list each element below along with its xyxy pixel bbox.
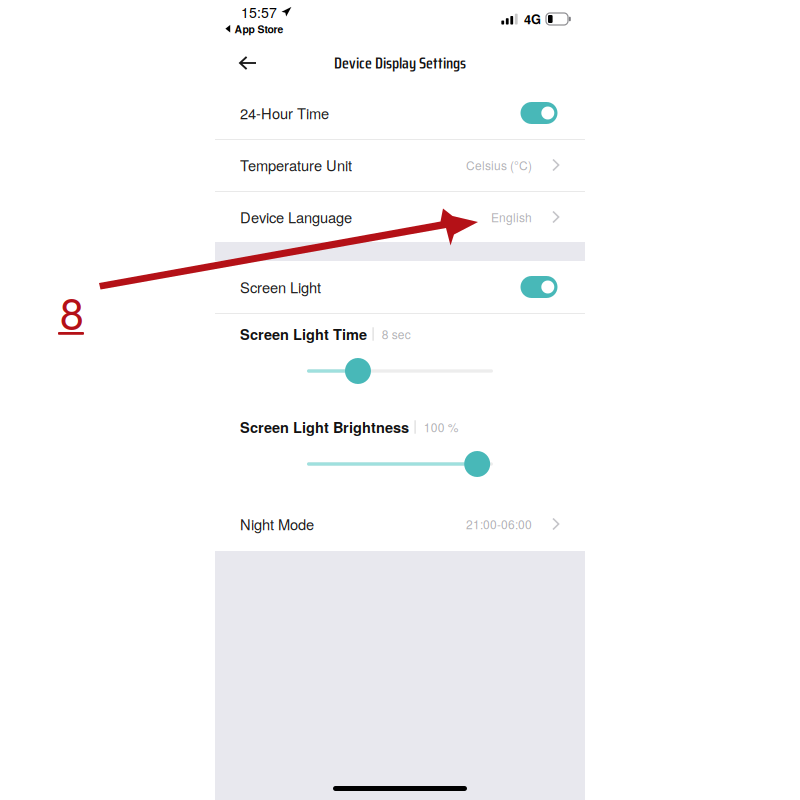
staticText: 4G	[524, 10, 541, 28]
staticText: 24-Hour Time	[240, 102, 329, 123]
staticText: English	[491, 208, 532, 226]
staticText: Screen Light	[240, 276, 321, 297]
staticText: Screen Light Brightness	[240, 417, 409, 437]
staticText: 8	[60, 280, 84, 341]
staticText: App Store	[234, 22, 283, 36]
button[interactable]: Night Mode	[215, 499, 585, 549]
staticText: Night Mode	[240, 513, 314, 534]
staticText: 8 sec	[382, 325, 411, 343]
staticText: 100 %	[424, 418, 459, 436]
button[interactable]: Device Language	[215, 192, 585, 242]
staticText: 21:00-06:00	[466, 515, 532, 533]
staticText: Temperature Unit	[240, 154, 352, 175]
button[interactable]: Screen Light	[215, 262, 585, 312]
button[interactable]: Temperature Unit	[215, 140, 585, 190]
staticText: Celsius (°C)	[466, 156, 532, 174]
staticText: Device Display Settings	[334, 50, 466, 76]
button[interactable]: Back	[228, 45, 268, 81]
staticText: 15:57	[241, 2, 277, 22]
staticText: Screen Light Time	[240, 324, 367, 344]
button[interactable]: 24-Hour Time	[215, 88, 585, 138]
staticText: Device Language	[240, 206, 352, 227]
